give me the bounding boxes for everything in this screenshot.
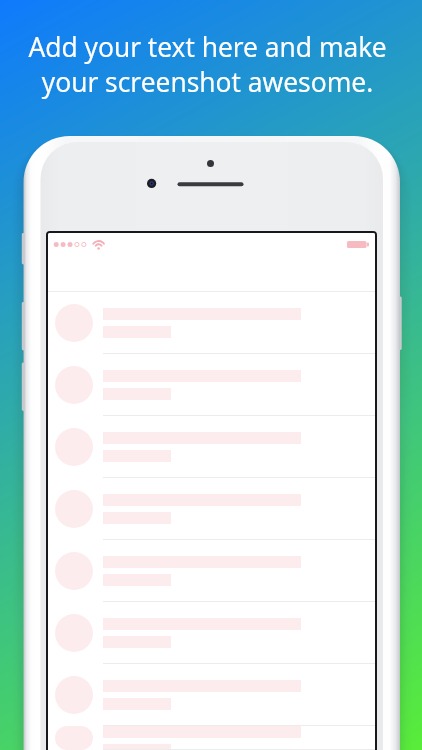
button[interactable] <box>48 354 375 416</box>
button[interactable] <box>48 292 375 354</box>
button[interactable]: Status bar <box>48 233 375 256</box>
button[interactable] <box>48 602 375 664</box>
staticText: Add your text here and make your screens… <box>28 29 387 100</box>
button[interactable] <box>48 664 375 726</box>
button[interactable] <box>48 540 375 602</box>
button[interactable] <box>48 416 375 478</box>
button[interactable] <box>48 478 375 540</box>
button[interactable] <box>48 726 375 750</box>
